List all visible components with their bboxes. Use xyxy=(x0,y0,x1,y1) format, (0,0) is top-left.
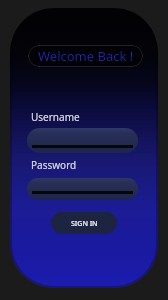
button[interactable]: SIGN IN xyxy=(51,212,117,234)
staticText: Username xyxy=(31,110,80,124)
button[interactable]: Welcome Back ! xyxy=(28,45,143,67)
button[interactable] xyxy=(27,128,138,153)
button[interactable] xyxy=(27,178,138,200)
staticText: Password xyxy=(31,158,77,172)
staticText: SIGN IN xyxy=(71,218,98,228)
staticText: Welcome Back ! xyxy=(38,47,134,65)
